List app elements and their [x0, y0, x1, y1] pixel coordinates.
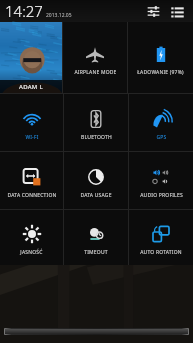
staticText: DATA USAGE	[80, 192, 112, 199]
staticText: WI-FI	[25, 134, 39, 141]
button[interactable]: JASNOŚĆ	[0, 210, 63, 265]
staticText: 14:27	[5, 1, 43, 21]
staticText: ADAM L	[19, 83, 43, 91]
button[interactable]: BLUETOOTH	[64, 94, 128, 151]
button[interactable]: Notifications list	[167, 1, 187, 21]
staticText: AUDIO PROFILES	[140, 192, 183, 199]
staticText: AUTO ROTATION	[140, 249, 182, 256]
button[interactable]: ŁADOWANIE (97%)	[128, 22, 193, 93]
button[interactable]: Settings sliders	[143, 1, 163, 21]
staticText: BLUETOOTH	[81, 134, 112, 141]
button[interactable]: Close quick settings	[0, 322, 193, 340]
staticText: ŁADOWANIE (97%)	[137, 69, 184, 76]
button[interactable]: GPS	[129, 94, 193, 151]
staticText: TIMEOUT	[84, 249, 108, 256]
staticText: DATA CONNECTION	[7, 192, 57, 199]
button[interactable]: TIMEOUT	[64, 210, 128, 265]
button[interactable]: User profile Adam L	[0, 22, 62, 93]
staticText: AIRPLANE MODE	[74, 69, 117, 76]
button[interactable]: WI-FI	[0, 94, 63, 151]
button[interactable]: DATA CONNECTION	[0, 152, 63, 209]
button[interactable]: AIRPLANE MODE	[63, 22, 127, 93]
button[interactable]: DATA USAGE	[64, 152, 128, 209]
button[interactable]: AUDIO PROFILES	[129, 152, 193, 209]
button[interactable]: AUTO ROTATION	[129, 210, 193, 265]
staticText: GPS	[156, 134, 167, 141]
staticText: JASNOŚĆ	[20, 249, 43, 256]
staticText: 2013.12.05	[46, 12, 72, 19]
